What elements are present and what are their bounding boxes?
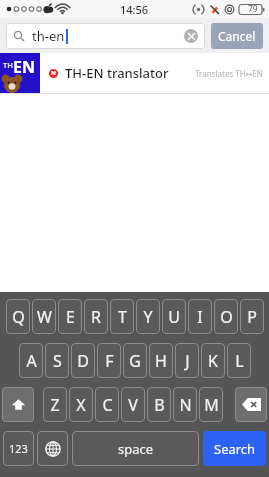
button[interactable]: L — [227, 343, 251, 378]
button[interactable]: S — [45, 343, 69, 378]
button[interactable]: I — [188, 299, 212, 334]
button[interactable]: P — [240, 299, 264, 334]
staticText: Translates TH↔EN — [195, 68, 263, 79]
button[interactable]: M — [199, 387, 223, 422]
staticText: L — [235, 350, 244, 372]
staticText: Search — [214, 440, 256, 458]
button[interactable]: Shift — [2, 387, 34, 422]
staticText: 123 — [9, 441, 28, 456]
button[interactable]: G — [123, 343, 147, 378]
staticText: Z — [50, 394, 60, 416]
button[interactable]: K — [201, 343, 225, 378]
staticText: R — [91, 306, 101, 328]
button[interactable]: Clear text — [184, 29, 198, 43]
button[interactable]: R — [84, 299, 108, 334]
staticText: O — [220, 306, 233, 328]
button[interactable]: A — [19, 343, 43, 378]
staticText: space — [118, 440, 154, 458]
staticText: G — [129, 350, 141, 372]
button[interactable]: N — [173, 387, 197, 422]
button[interactable]: Z — [43, 387, 67, 422]
button[interactable]: space — [72, 431, 199, 466]
button[interactable]: U — [162, 299, 186, 334]
staticText: th-en — [32, 27, 65, 45]
button[interactable]: E — [58, 299, 82, 334]
button[interactable]: Y — [136, 299, 160, 334]
button[interactable]: Search — [203, 431, 266, 466]
staticText: K — [208, 350, 218, 372]
button[interactable]: TH — [0, 53, 269, 93]
staticText: U — [168, 306, 180, 328]
staticText: X — [76, 394, 86, 416]
staticText: B — [154, 394, 165, 416]
button[interactable]: Change keyboard language — [37, 431, 68, 466]
staticText: F — [105, 350, 114, 372]
staticText: I — [197, 306, 203, 328]
button[interactable]: 123 — [3, 431, 34, 466]
button[interactable]: th-en — [6, 23, 205, 49]
staticText: W — [37, 306, 52, 328]
button[interactable]: F — [97, 343, 121, 378]
staticText: V — [128, 394, 138, 416]
button[interactable]: Delete — [235, 387, 267, 422]
staticText: A — [26, 350, 37, 372]
button[interactable]: V — [121, 387, 145, 422]
staticText: Cancel — [218, 28, 256, 44]
staticText: E — [66, 306, 75, 328]
staticText: T — [118, 306, 127, 328]
staticText: N — [179, 394, 192, 416]
button[interactable]: B — [147, 387, 171, 422]
staticText: EN — [13, 56, 35, 78]
staticText: D — [77, 350, 89, 372]
staticText: N — [51, 69, 56, 77]
button[interactable]: H — [149, 343, 173, 378]
button[interactable]: Q — [6, 299, 30, 334]
staticText: P — [247, 306, 257, 328]
staticText: M — [204, 394, 219, 416]
staticText: 79 — [248, 3, 258, 15]
button[interactable]: C — [95, 387, 119, 422]
button[interactable]: W — [32, 299, 56, 334]
staticText: Y — [143, 306, 153, 328]
button[interactable]: O — [214, 299, 238, 334]
button[interactable]: X — [69, 387, 93, 422]
staticText: 14:56 — [120, 2, 149, 17]
button[interactable]: Cancel — [211, 23, 263, 49]
staticText: TH-EN translator — [65, 64, 169, 82]
staticText: J — [185, 350, 190, 372]
staticText: S — [53, 350, 62, 372]
staticText: Q — [12, 306, 25, 328]
button[interactable]: J — [175, 343, 199, 378]
button[interactable]: D — [71, 343, 95, 378]
staticText: TH — [3, 60, 14, 70]
button[interactable]: T — [110, 299, 134, 334]
staticText: C — [102, 394, 113, 416]
staticText: H — [155, 350, 167, 372]
